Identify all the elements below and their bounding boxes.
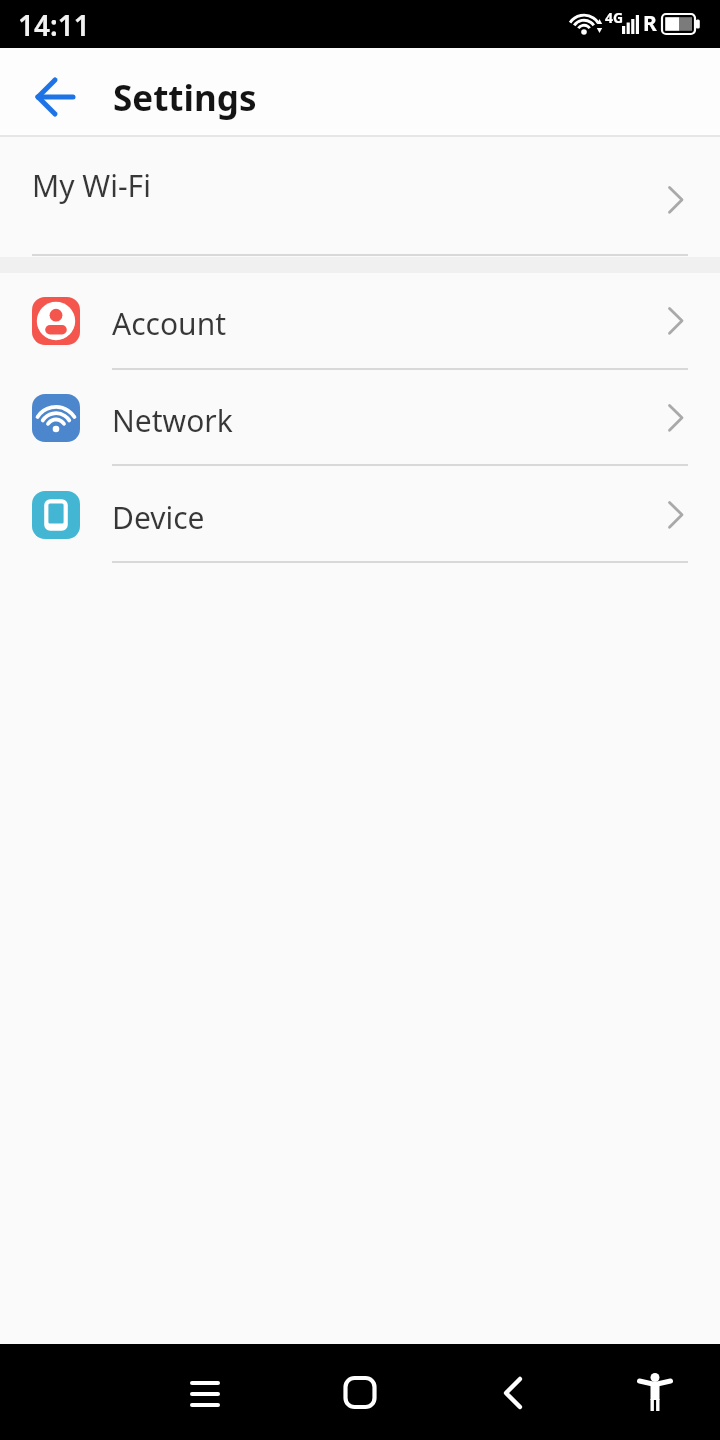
staticText: Network (112, 400, 233, 441)
staticText: My Wi-Fi (32, 165, 151, 206)
button[interactable]: My Wi-Fi (0, 137, 720, 255)
button[interactable] (26, 67, 86, 123)
button[interactable]: Account (0, 273, 720, 368)
button[interactable]: Network (0, 370, 720, 465)
staticText: R (643, 9, 657, 38)
staticText: Account (112, 303, 227, 344)
staticText: 14:11 (18, 6, 90, 44)
staticText: Device (112, 497, 205, 538)
staticText: Settings (113, 74, 257, 122)
button[interactable] (328, 1360, 392, 1424)
button[interactable] (623, 1360, 687, 1424)
staticText: 4G (605, 8, 624, 27)
button[interactable] (480, 1360, 544, 1424)
button[interactable]: Device (0, 467, 720, 562)
button[interactable] (173, 1360, 237, 1424)
